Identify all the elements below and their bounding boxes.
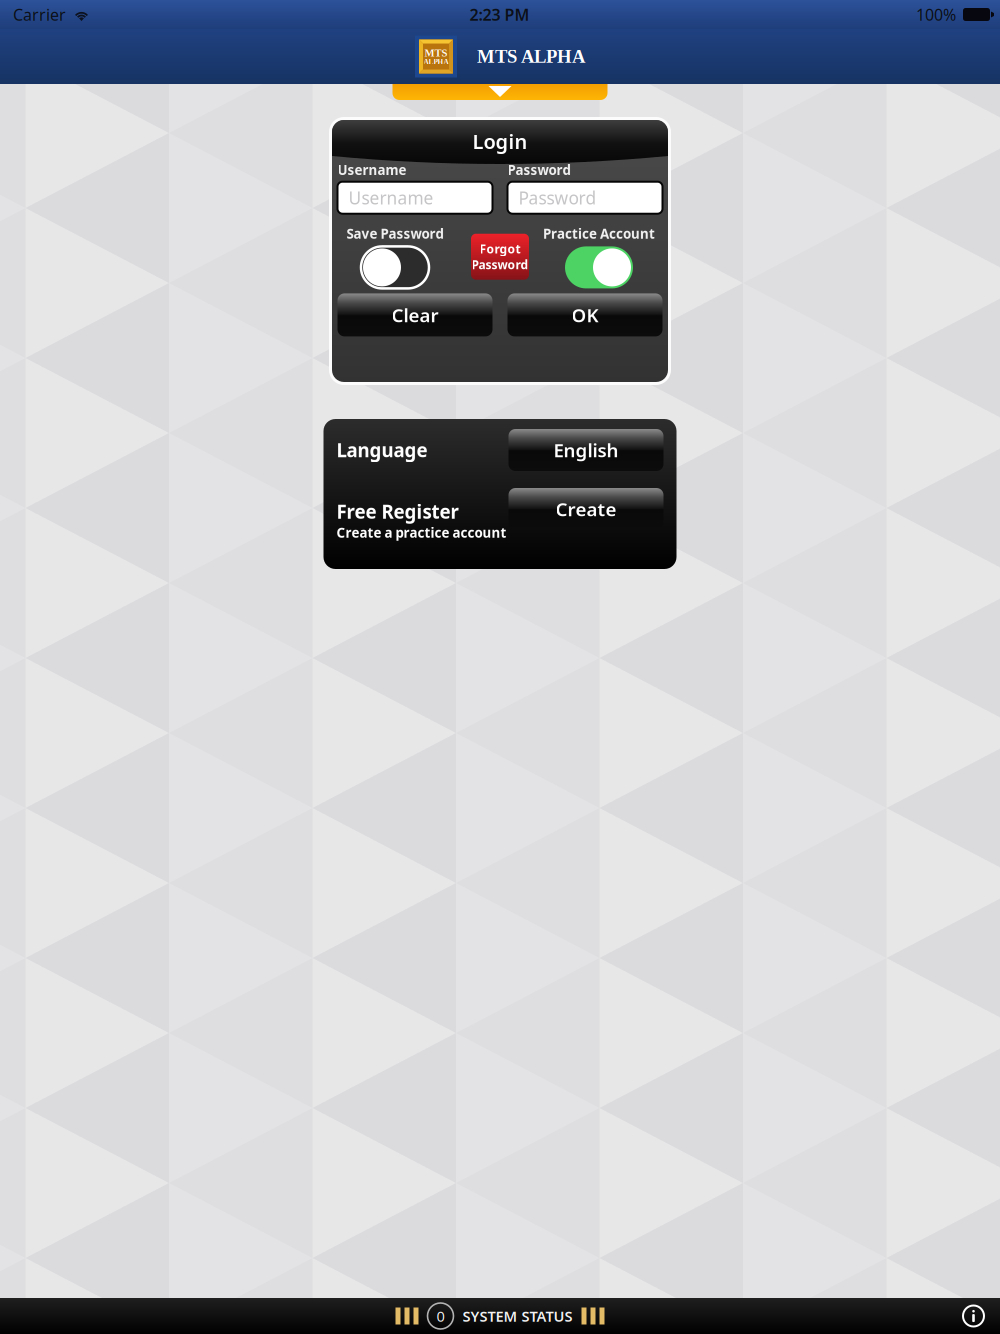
staticText: MTS ALPHA bbox=[477, 46, 585, 67]
staticText: Password bbox=[518, 186, 596, 209]
staticText: Username bbox=[348, 186, 433, 209]
staticText: Username bbox=[337, 161, 406, 179]
staticText: English bbox=[553, 438, 618, 462]
staticText: Save Password bbox=[346, 225, 443, 242]
staticText: Language bbox=[336, 438, 427, 462]
staticText: Carrier bbox=[13, 4, 66, 25]
staticText: Practice Account bbox=[543, 225, 655, 242]
button[interactable]: Username bbox=[337, 182, 492, 214]
staticText: SYSTEM STATUS bbox=[462, 1306, 572, 1326]
staticText: Forgot bbox=[479, 241, 520, 257]
staticText: ALPHA bbox=[423, 58, 448, 66]
staticText: 2:23 PM bbox=[469, 4, 529, 25]
button[interactable]: Practice Account, on bbox=[565, 246, 633, 288]
staticText: 100% bbox=[916, 4, 956, 25]
button[interactable]: English bbox=[508, 429, 663, 471]
staticText: Clear bbox=[391, 302, 438, 327]
button[interactable]: Save Password, off bbox=[361, 246, 429, 288]
staticText: Password bbox=[471, 257, 528, 273]
staticText: Create bbox=[555, 497, 616, 521]
button[interactable]: Create bbox=[508, 488, 663, 530]
button[interactable]: Forgot bbox=[471, 234, 529, 280]
staticText: Free Register bbox=[336, 499, 458, 524]
staticText: 0 bbox=[436, 1306, 444, 1326]
staticText: OK bbox=[571, 302, 598, 327]
staticText: Login bbox=[472, 128, 527, 155]
button[interactable]: OK bbox=[507, 293, 662, 336]
button[interactable]: Clear bbox=[337, 293, 492, 336]
button[interactable]: Information bbox=[963, 1305, 984, 1326]
staticText: Create a practice account bbox=[336, 524, 506, 541]
staticText: MTS bbox=[424, 47, 447, 59]
button[interactable]: Password bbox=[507, 182, 662, 214]
staticText: Password bbox=[507, 161, 570, 179]
